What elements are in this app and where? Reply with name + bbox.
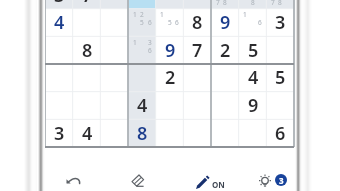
button[interactable]: 7 <box>73 0 101 9</box>
staticText: 4 <box>54 10 65 35</box>
button[interactable]: 3 <box>266 8 294 36</box>
button[interactable]: 8 <box>128 119 156 147</box>
staticText: 5 <box>140 18 144 26</box>
staticText: 5 <box>248 38 259 63</box>
button[interactable]: 2 <box>211 36 239 64</box>
button[interactable]: 7 <box>183 36 211 64</box>
staticText: 9 <box>248 93 259 118</box>
staticText: 5 <box>275 65 286 90</box>
staticText: 6 <box>175 18 179 26</box>
staticText: 8 <box>278 0 282 6</box>
staticText: 8 <box>137 121 148 146</box>
staticText: 1 <box>133 38 137 46</box>
staticText: 6 <box>275 121 286 146</box>
staticText: 8 <box>192 10 203 35</box>
button[interactable]: 4 <box>128 91 156 119</box>
staticText: 3 <box>148 38 152 46</box>
button[interactable]: 9 <box>156 36 184 64</box>
staticText: 8 <box>82 38 93 63</box>
staticText: 3 <box>54 0 65 8</box>
staticText: 1 <box>243 10 247 18</box>
staticText: 1 <box>133 10 137 18</box>
button[interactable]: 8 <box>73 36 101 64</box>
staticText: 3 <box>275 10 286 35</box>
staticText: 2 <box>220 38 231 63</box>
button[interactable]: Pencil notes on <box>191 170 215 191</box>
staticText: 7 <box>271 0 275 6</box>
staticText: 8 <box>223 0 227 6</box>
button[interactable]: 3 <box>275 174 287 186</box>
button[interactable]: 3 <box>45 119 73 147</box>
staticText: 5 <box>168 18 172 26</box>
staticText: 4 <box>137 93 148 118</box>
button[interactable]: Undo <box>61 170 85 191</box>
button[interactable]: Erase <box>125 169 149 191</box>
button[interactable]: 9 <box>211 8 239 36</box>
staticText: 4 <box>248 65 259 90</box>
staticText: 1 <box>160 10 164 18</box>
button[interactable]: Hint <box>253 169 277 191</box>
staticText: 6 <box>258 18 262 26</box>
staticText: 9 <box>220 10 231 35</box>
button[interactable]: 3 <box>45 0 73 9</box>
button[interactable]: 5 <box>266 63 294 91</box>
button[interactable]: 8 <box>183 8 211 36</box>
button[interactable]: 4 <box>239 63 267 91</box>
staticText: 6 <box>148 46 152 54</box>
staticText: 3 <box>279 175 284 186</box>
button[interactable]: 6 <box>266 119 294 147</box>
staticText: 6 <box>148 18 152 26</box>
staticText: ON <box>212 179 225 190</box>
button[interactable]: 5 <box>239 36 267 64</box>
button[interactable]: 4 <box>73 119 101 147</box>
staticText: 7 <box>82 0 93 8</box>
staticText: 3 <box>54 121 65 146</box>
button[interactable]: 4 <box>45 8 73 36</box>
staticText: 2 <box>140 10 144 18</box>
staticText: 7 <box>216 0 220 6</box>
staticText: 7 <box>192 38 203 63</box>
button[interactable]: 2 <box>156 63 184 91</box>
staticText: 2 <box>165 65 176 90</box>
staticText: 9 <box>165 38 176 63</box>
button[interactable]: 9 <box>239 91 267 119</box>
staticText: 8 <box>251 0 255 6</box>
staticText: 4 <box>82 121 93 146</box>
